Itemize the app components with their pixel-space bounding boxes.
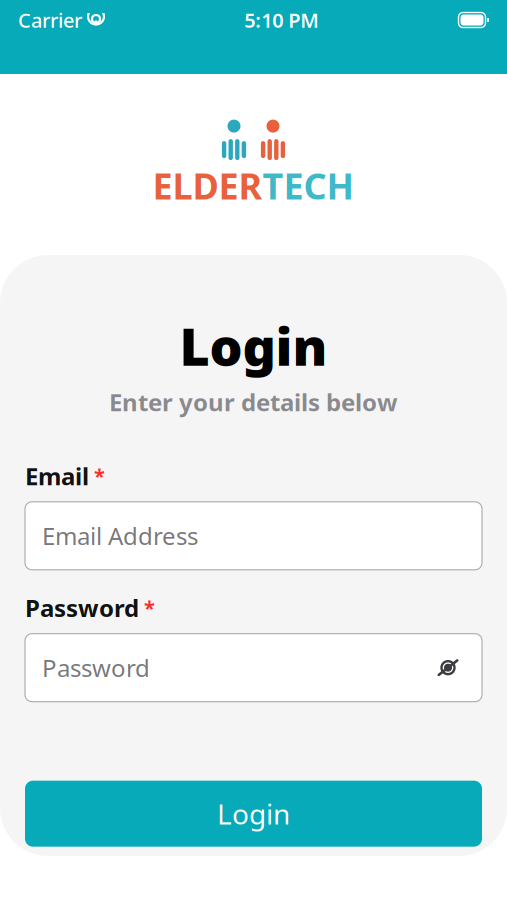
staticText: TECH bbox=[262, 162, 354, 209]
staticText: * bbox=[144, 594, 155, 621]
staticText: Enter your details below bbox=[109, 386, 398, 418]
staticText: Email Address bbox=[42, 520, 198, 552]
staticText: Login bbox=[179, 311, 327, 380]
staticText: Login bbox=[217, 795, 290, 832]
staticText: 5:10 PM bbox=[244, 7, 319, 33]
staticText: Password bbox=[42, 652, 150, 684]
staticText: ELDER bbox=[152, 162, 262, 209]
staticText: Carrier bbox=[18, 7, 82, 33]
staticText: Email bbox=[25, 460, 89, 492]
button[interactable]: Show password bbox=[431, 651, 465, 685]
staticText: Password bbox=[25, 592, 139, 624]
staticText: * bbox=[94, 463, 105, 489]
button[interactable]: Login bbox=[25, 781, 482, 847]
